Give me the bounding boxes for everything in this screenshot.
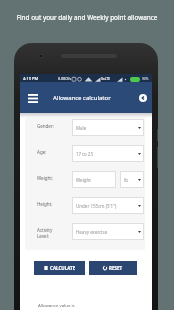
- staticText: Activity Level:: [37, 227, 67, 239]
- button[interactable]: Heavy exercise: [72, 223, 144, 240]
- staticText: Allowance calculator: [53, 94, 111, 102]
- staticText: 0.08O/s: [58, 76, 71, 81]
- button[interactable]: 17 to 25: [72, 145, 144, 162]
- button[interactable]: Back: [139, 94, 147, 102]
- staticText: 90%: [142, 77, 149, 81]
- button[interactable]: Under 155cm (5'1"): [72, 197, 144, 214]
- staticText: Heavy exercise: [76, 229, 108, 235]
- staticText: 17 to 25: [76, 151, 93, 157]
- staticText: CALCULATE: [50, 265, 76, 271]
- staticText: 4:19 PM: [23, 76, 39, 81]
- button[interactable]: Weight: [72, 171, 116, 188]
- staticText: VoLTE: [101, 77, 110, 81]
- staticText: Find out your daily and Weekly point all…: [0, 13, 174, 22]
- staticText: RESET: [109, 265, 123, 271]
- staticText: Gender:: [37, 123, 67, 129]
- staticText: lb: [124, 177, 128, 183]
- button[interactable]: Open navigation menu: [25, 90, 41, 106]
- button[interactable]: Male: [72, 119, 144, 136]
- staticText: Under 155cm (5'1"): [76, 203, 117, 209]
- button[interactable]: RESET: [89, 261, 137, 275]
- staticText: Weight:: [37, 175, 67, 181]
- staticText: Age:: [37, 149, 67, 155]
- staticText: Male: [76, 125, 87, 131]
- button[interactable]: lb: [120, 171, 144, 188]
- staticText: Weight: [76, 177, 91, 183]
- staticText: Allowance value is: [38, 302, 75, 308]
- button[interactable]: CALCULATE: [34, 261, 85, 275]
- staticText: Height:: [37, 201, 67, 207]
